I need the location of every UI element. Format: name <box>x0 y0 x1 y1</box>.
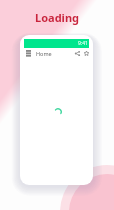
button[interactable]: Menu <box>23 48 33 58</box>
staticText: Loading <box>35 10 79 25</box>
button[interactable]: Share <box>72 48 82 58</box>
button[interactable]: Favorite <box>81 48 91 58</box>
staticText: 9:41 <box>78 40 88 47</box>
staticText: Home <box>36 50 52 57</box>
